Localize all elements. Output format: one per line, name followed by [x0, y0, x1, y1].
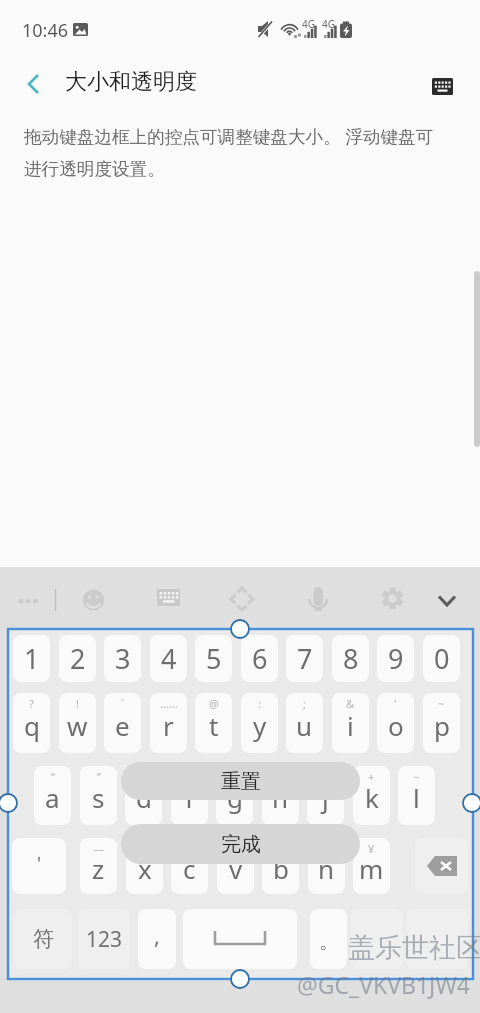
staticText: 完成: [221, 832, 261, 857]
staticText: o: [388, 708, 404, 743]
staticText: l: [413, 780, 420, 815]
button[interactable]: Voice input: [302, 582, 334, 614]
button[interactable]: ¥: [353, 838, 390, 894]
staticText: `: [121, 696, 125, 711]
staticText: d: [136, 780, 152, 815]
staticText: 。: [319, 929, 339, 954]
staticText: 4G: [322, 17, 335, 31]
staticText: k: [365, 780, 379, 815]
button[interactable]: [406, 909, 468, 969]
button[interactable]: 完成: [121, 824, 360, 864]
button[interactable]: 。: [310, 909, 347, 969]
button[interactable]: +: [353, 766, 390, 825]
button[interactable]: ;: [286, 693, 323, 753]
button[interactable]: ......: [150, 693, 187, 753]
button[interactable]: 符: [14, 909, 72, 969]
button[interactable]: 重置: [121, 762, 360, 800]
button[interactable]: 3: [104, 635, 141, 682]
button[interactable]: Back: [18, 68, 50, 100]
button[interactable]: 5: [195, 635, 232, 682]
button[interactable]: ': [377, 693, 414, 753]
staticText: 7: [297, 640, 313, 677]
button[interactable]: Move keyboard: [226, 583, 258, 615]
staticText: u: [296, 708, 313, 743]
button[interactable]: !: [59, 693, 96, 753]
staticText: 2: [70, 640, 86, 677]
staticText: ': [394, 696, 397, 711]
button[interactable]: —: [80, 838, 117, 894]
button[interactable]: Keyboard: [424, 68, 460, 104]
button[interactable]: ”: [80, 766, 117, 825]
staticText: ,: [154, 920, 160, 950]
button[interactable]: >: [217, 838, 254, 894]
staticText: −: [413, 769, 420, 784]
button[interactable]: Hide keyboard: [431, 584, 463, 616]
button[interactable]: :: [241, 693, 278, 753]
staticText: 重置: [221, 769, 261, 794]
button[interactable]: $: [308, 838, 345, 894]
button[interactable]: 4: [150, 635, 187, 682]
staticText: “: [51, 769, 55, 784]
staticText: 10:46: [22, 18, 69, 43]
button[interactable]: ': [12, 838, 66, 894]
button[interactable]: ": [126, 838, 163, 894]
button[interactable]: @: [195, 693, 232, 753]
button[interactable]: ?: [13, 693, 50, 753]
button[interactable]: <: [171, 838, 208, 894]
staticText: ¥: [368, 841, 375, 856]
staticText: ......: [160, 696, 178, 711]
staticText: w: [67, 708, 88, 743]
staticText: ;: [303, 696, 306, 711]
staticText: 6: [252, 640, 268, 677]
button[interactable]: 8: [332, 635, 369, 682]
button[interactable]: 7: [286, 635, 323, 682]
staticText: ?: [29, 696, 34, 711]
button[interactable]: 0: [423, 635, 460, 682]
staticText: 拖动键盘边框上的控点可调整键盘大小。 浮动键盘可进行透明度设置。: [24, 124, 448, 180]
staticText: :: [258, 696, 261, 711]
staticText: ”: [97, 769, 101, 784]
button[interactable]: Keyboard layout: [152, 583, 184, 615]
button[interactable]: ,: [138, 909, 176, 969]
button[interactable]: /: [262, 838, 299, 894]
button[interactable]: More options: [8, 585, 48, 611]
staticText: a: [45, 780, 60, 815]
button[interactable]: 1: [13, 635, 50, 682]
staticText: 5: [206, 640, 222, 677]
button[interactable]: Backspace: [415, 838, 468, 894]
staticText: 大小和透明度: [65, 68, 197, 96]
button[interactable]: 6: [241, 635, 278, 682]
staticText: t: [209, 708, 219, 743]
button[interactable]: &: [332, 693, 369, 753]
button[interactable]: %: [216, 766, 253, 825]
staticText: 3: [115, 640, 131, 677]
button[interactable]: −: [398, 766, 435, 825]
button[interactable]: [351, 909, 403, 969]
button[interactable]: ~: [423, 693, 460, 753]
staticText: r: [163, 708, 174, 743]
staticText: @GC_VKVB1JW4: [297, 969, 470, 1000]
staticText: &: [346, 696, 355, 711]
button[interactable]: “: [34, 766, 71, 825]
button[interactable]: ): [171, 766, 208, 825]
staticText: s: [92, 780, 105, 815]
staticText: 4G: [302, 17, 315, 31]
button[interactable]: `: [104, 693, 141, 753]
button[interactable]: Space: [183, 909, 297, 969]
button[interactable]: *: [307, 766, 344, 825]
button[interactable]: (: [125, 766, 162, 825]
button[interactable]: Settings: [377, 583, 409, 615]
button[interactable]: 2: [59, 635, 96, 682]
staticText: +: [368, 769, 375, 784]
staticText: v: [229, 851, 243, 886]
button[interactable]: 9: [377, 635, 414, 682]
staticText: ~: [438, 696, 445, 711]
button[interactable]: #: [262, 766, 299, 825]
button[interactable]: 123: [78, 909, 130, 969]
button[interactable]: Emoji: [78, 584, 110, 616]
